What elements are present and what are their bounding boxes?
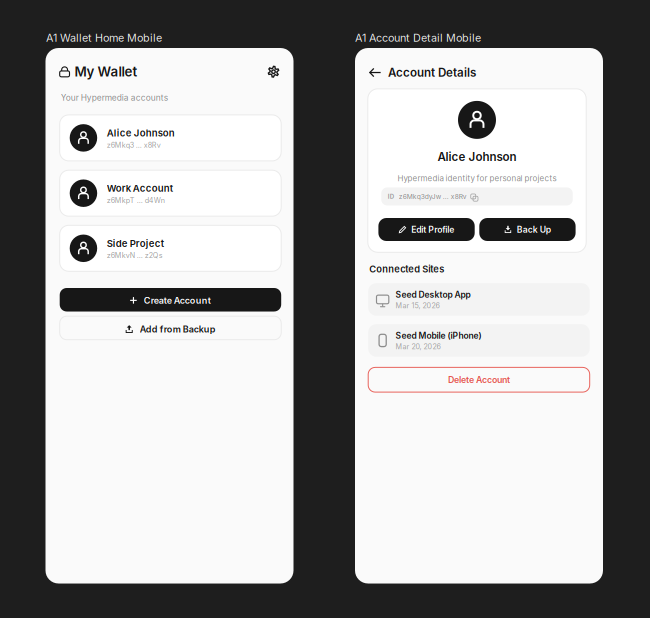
button[interactable]: Edit Profile [378,218,475,241]
button[interactable]: Add from Backup [60,316,281,340]
button[interactable]: Back [368,65,382,79]
button[interactable]: Seed Mobile (iPhone) [368,324,590,357]
staticText: Seed Desktop App [395,289,470,300]
staticText: Hypermedia identity for personal project… [397,174,556,183]
staticText: Work Account [107,182,173,194]
staticText: Mar 20, 2026 [395,342,440,351]
button[interactable]: Seed Desktop App [368,283,590,316]
staticText: z6MkvN ... z2Qs [107,251,163,260]
staticText: A1 Account Detail Mobile [355,31,481,44]
staticText: Your Hypermedia accounts [61,92,168,103]
staticText: Add from Backup [140,324,216,335]
button[interactable]: Side Project [60,225,281,271]
staticText: Account Details [388,65,476,79]
button[interactable]: Alice Johnson [60,115,281,161]
button[interactable]: Create Account [60,288,281,311]
staticText: Connected Sites [369,263,444,275]
staticText: z6Mkq3 ... x8Rv [107,141,161,149]
button[interactable]: Back Up [479,218,576,241]
staticText: Side Project [107,238,164,249]
staticText: My Wallet [74,63,137,80]
staticText: z6MkpT ... d4Wn [107,196,165,205]
staticText: Alice Johnson [437,150,516,164]
staticText: Seed Mobile (iPhone) [395,330,481,341]
staticText: Back Up [517,224,551,235]
button[interactable]: Delete Account [368,367,590,392]
staticText: Delete Account [448,374,510,385]
button[interactable]: Settings [263,62,283,82]
button[interactable]: Copy ID [469,192,478,201]
staticText: A1 Wallet Home Mobile [46,31,162,44]
staticText: Alice Johnson [107,127,175,139]
staticText: Edit Profile [411,224,454,235]
staticText: Create Account [144,295,211,306]
staticText: z6Mkq3dyJw ... x8Rv [399,192,467,200]
staticText: ID [388,193,394,200]
button[interactable]: Work Account [60,170,281,216]
staticText: Mar 15, 2026 [395,301,439,310]
